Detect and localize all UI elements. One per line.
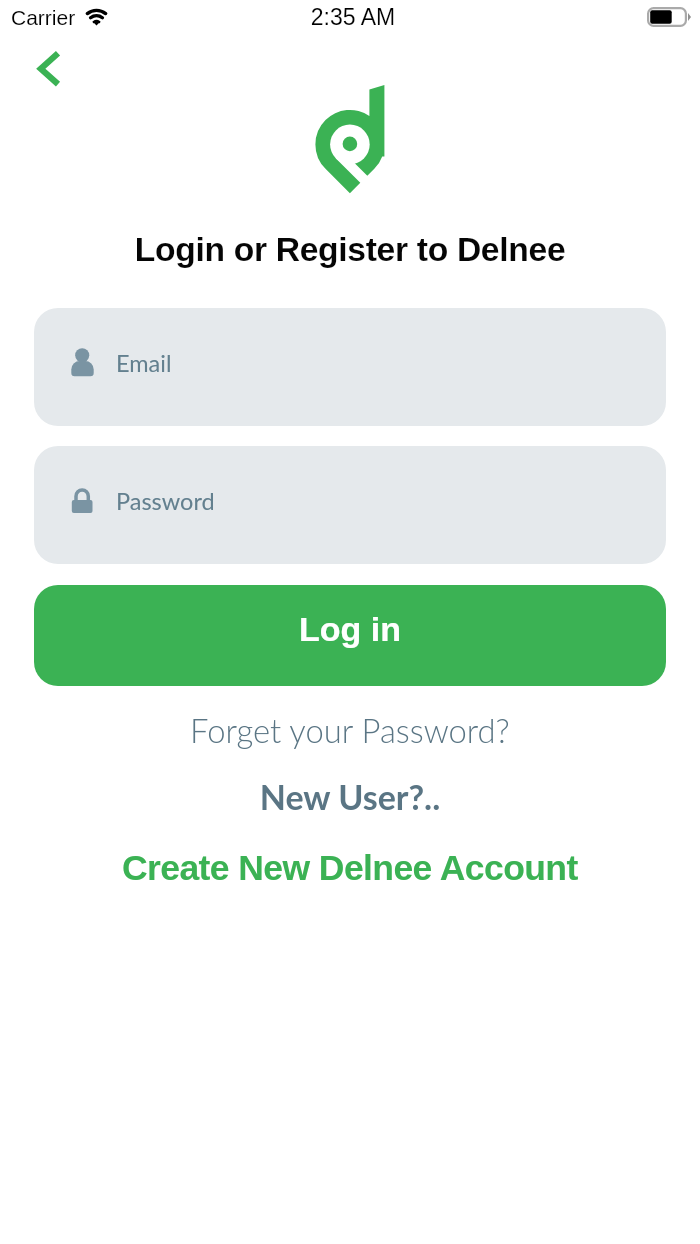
- button[interactable]: Back: [22, 44, 74, 96]
- staticText: Login or Register to Delnee: [0, 231, 700, 269]
- staticText: New User?..: [0, 776, 700, 817]
- button[interactable]: Log in: [34, 585, 666, 686]
- staticText: Email: [116, 349, 172, 377]
- staticText: Password: [116, 487, 215, 515]
- staticText: 2:35 AM: [3, 4, 700, 30]
- staticText: Log in: [299, 610, 401, 648]
- button[interactable]: Forget your Password?: [190, 711, 510, 750]
- button[interactable]: Email: [34, 308, 666, 426]
- staticText: Carrier: [11, 6, 76, 29]
- button[interactable]: Password: [34, 446, 666, 564]
- button[interactable]: Create New Delnee Account: [122, 848, 578, 888]
